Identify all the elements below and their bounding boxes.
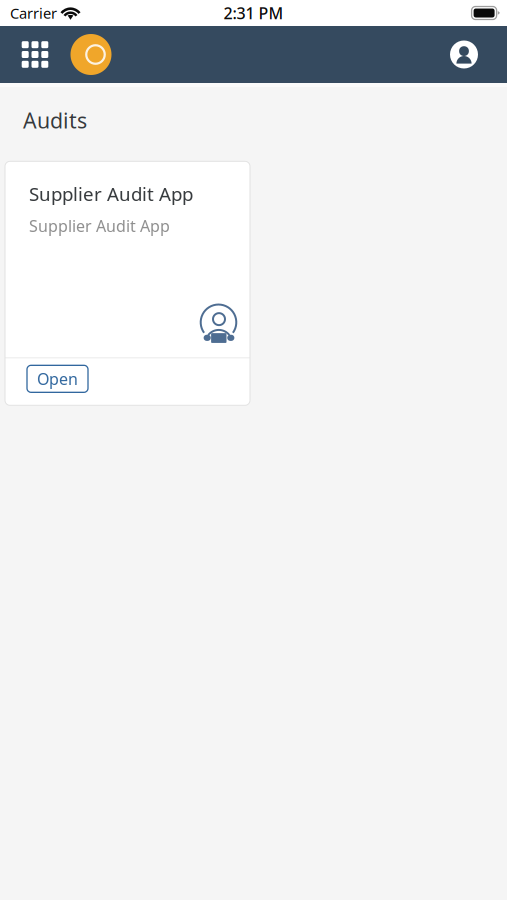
- staticText: Audits: [23, 106, 87, 134]
- button[interactable]: App launcher: [15, 34, 55, 74]
- staticText: Open: [37, 368, 78, 389]
- staticText: 2:31 PM: [223, 2, 283, 24]
- staticText: Supplier Audit App: [29, 215, 170, 236]
- staticText: Supplier Audit App: [29, 181, 193, 206]
- button[interactable]: Open: [27, 365, 88, 392]
- button[interactable]: Supplier Audit App: [5, 161, 250, 405]
- button[interactable]: Home: [55, 29, 116, 79]
- staticText: Carrier: [10, 3, 57, 23]
- button[interactable]: Account: [443, 33, 485, 75]
